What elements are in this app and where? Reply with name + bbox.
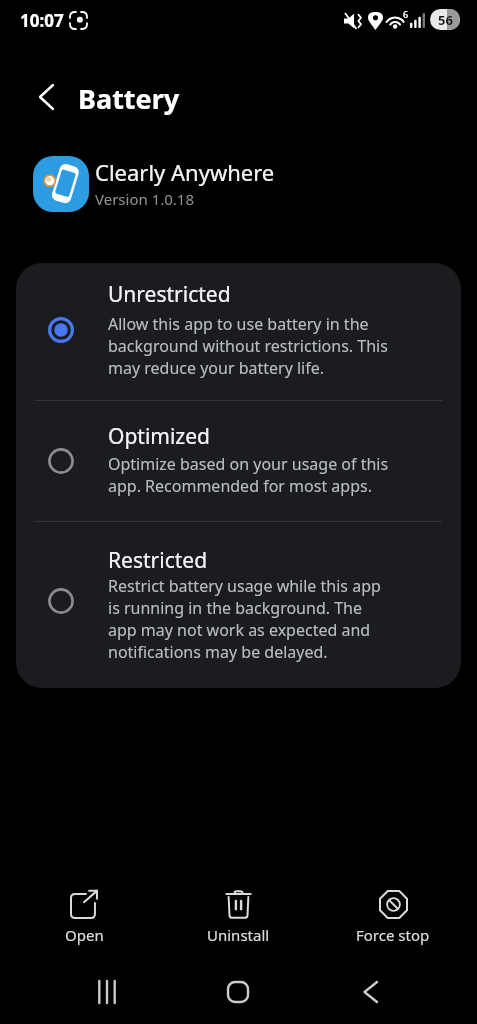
staticText: Version 1.0.18 — [95, 189, 195, 209]
staticText: Allow this app to use battery in the bac… — [108, 313, 388, 379]
button[interactable]: Uninstall — [183, 884, 293, 954]
staticText: Clearly Anywhere — [95, 157, 275, 187]
staticText: Restrict battery usage while this app is… — [108, 575, 381, 663]
button[interactable] — [62, 966, 152, 1018]
staticText: Unrestricted — [108, 280, 231, 309]
button[interactable]: Optimized — [16, 401, 461, 521]
staticText: Uninstall — [207, 925, 270, 945]
button[interactable] — [38, 85, 53, 109]
button[interactable]: Force stop — [338, 884, 448, 954]
staticText: Open — [65, 925, 104, 945]
staticText: Force stop — [356, 925, 430, 945]
button[interactable]: Open — [29, 884, 139, 954]
button[interactable] — [193, 966, 283, 1018]
staticText: Restricted — [108, 546, 208, 575]
staticText: Battery — [78, 80, 180, 117]
button[interactable]: Unrestricted — [16, 263, 461, 400]
staticText: Optimize based on your usage of this app… — [108, 453, 389, 497]
staticText: 56 — [438, 11, 453, 29]
button[interactable]: Restricted — [16, 522, 461, 688]
button[interactable] — [325, 966, 415, 1018]
staticText: 10:07 — [20, 9, 64, 32]
staticText: 6 — [403, 8, 409, 20]
button[interactable] — [33, 156, 89, 212]
staticText: Optimized — [108, 422, 210, 451]
